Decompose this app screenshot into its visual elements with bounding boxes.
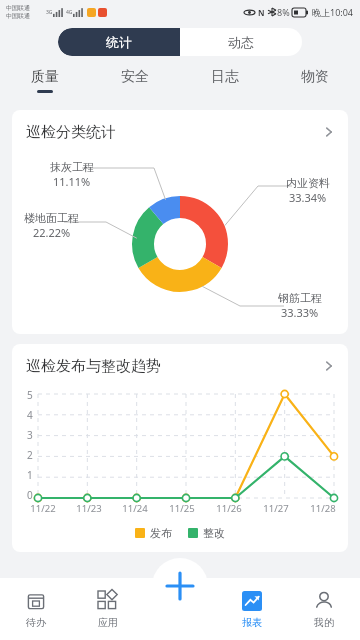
button[interactable]: 待办 [0, 578, 72, 640]
staticText: 应用 [98, 616, 118, 629]
button[interactable]: Add [152, 558, 208, 614]
button[interactable]: 物资 [270, 60, 360, 100]
staticText: 11/25 [169, 502, 195, 515]
staticText: 钢筋工程 [278, 291, 322, 305]
staticText: 22.22% [33, 225, 71, 240]
staticText: 内业资料 [286, 176, 330, 190]
staticText: 0 [27, 488, 33, 502]
staticText: 中国联通 [6, 4, 30, 12]
staticText: 动态 [228, 34, 254, 50]
staticText: 11/27 [263, 502, 289, 515]
staticText: 我的 [314, 616, 334, 629]
staticText: 11/24 [122, 502, 148, 515]
staticText: 待办 [26, 616, 46, 629]
button[interactable]: 安全 [90, 60, 180, 100]
staticText: 报表 [242, 616, 262, 629]
staticText: 11/23 [76, 502, 102, 515]
staticText: 巡检分类统计 [26, 123, 116, 142]
button[interactable]: 我的 [288, 578, 360, 640]
staticText: 3G [46, 9, 53, 16]
staticText: 3 [27, 428, 33, 442]
staticText: 2 [27, 448, 33, 462]
staticText: 4G [66, 9, 73, 16]
button[interactable]: 巡检分类统计 [12, 110, 348, 154]
staticText: 1 [27, 468, 33, 482]
staticText: 统计 [106, 34, 132, 50]
staticText: 8% [277, 6, 290, 18]
staticText: 11.11% [53, 174, 91, 189]
other: More [322, 125, 336, 139]
staticText: 整改 [203, 526, 225, 540]
staticText: 日志 [211, 68, 239, 86]
staticText: 抹灰工程 [50, 160, 94, 174]
button[interactable]: 统计 [58, 28, 180, 56]
button[interactable]: 巡检发布与整改趋势 [12, 344, 348, 388]
staticText: 4 [27, 408, 33, 422]
button[interactable]: 应用 [72, 578, 144, 640]
staticText: N [258, 7, 265, 18]
staticText: 巡检发布与整改趋势 [26, 357, 161, 376]
staticText: 发布 [150, 526, 172, 540]
button[interactable]: 动态 [180, 28, 302, 56]
staticText: 11/28 [310, 502, 336, 515]
staticText: 33.33% [281, 305, 319, 320]
staticText: 楼地面工程 [24, 211, 79, 225]
button[interactable]: 质量 [0, 60, 90, 100]
staticText: 物资 [301, 68, 329, 86]
button[interactable]: 日志 [180, 60, 270, 100]
staticText: 中国联通 [6, 12, 30, 20]
staticText: 5 [27, 388, 33, 402]
staticText: 安全 [121, 68, 149, 86]
staticText: 晚上10:04 [312, 6, 354, 18]
button[interactable]: 报表 [216, 578, 288, 640]
other: More [322, 359, 336, 373]
staticText: 33.34% [289, 190, 327, 205]
staticText: 11/26 [216, 502, 242, 515]
staticText: 质量 [31, 68, 59, 86]
staticText: 11/22 [30, 502, 56, 515]
